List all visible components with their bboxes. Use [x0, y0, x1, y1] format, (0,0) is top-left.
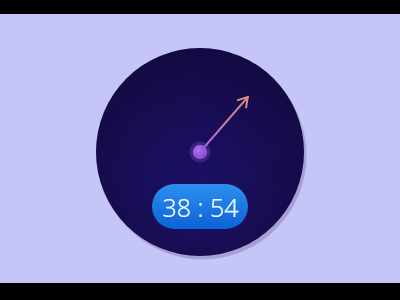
staticText: 38 : 54 [162, 190, 239, 224]
button[interactable]: 38 : 54 [152, 184, 248, 229]
button[interactable]: Timer dial [93, 45, 307, 259]
